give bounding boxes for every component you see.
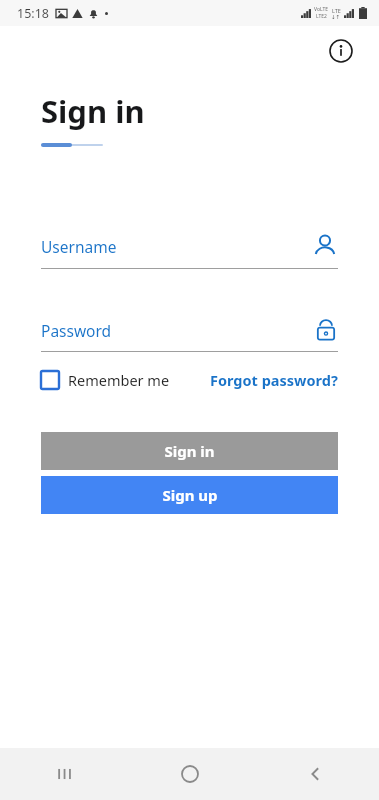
staticText: Password bbox=[41, 320, 112, 341]
staticText: Sign in bbox=[164, 441, 215, 461]
button[interactable]: Username bbox=[41, 233, 338, 269]
button[interactable]: Sign up bbox=[41, 476, 338, 514]
button[interactable]: Information bbox=[325, 35, 357, 67]
button[interactable]: Home bbox=[127, 748, 253, 800]
staticText: Forgot password? bbox=[210, 370, 338, 390]
staticText: LTE bbox=[332, 7, 341, 14]
staticText: Remember me bbox=[68, 370, 170, 390]
button[interactable]: Remember me bbox=[41, 370, 170, 390]
staticText: LTE2 bbox=[316, 13, 327, 20]
staticText: 15:18 bbox=[17, 5, 49, 22]
staticText: VoLTE bbox=[314, 6, 329, 13]
staticText: Sign in bbox=[41, 90, 145, 132]
button[interactable]: Password bbox=[41, 318, 338, 352]
staticText: Sign up bbox=[162, 485, 218, 505]
button[interactable]: Recent apps bbox=[0, 748, 127, 800]
button[interactable]: Back bbox=[253, 748, 379, 800]
staticText: ↓↑ bbox=[331, 14, 341, 20]
button[interactable]: Sign in bbox=[41, 432, 338, 470]
staticText: Username bbox=[41, 236, 117, 257]
button[interactable]: Forgot password? bbox=[210, 370, 338, 390]
